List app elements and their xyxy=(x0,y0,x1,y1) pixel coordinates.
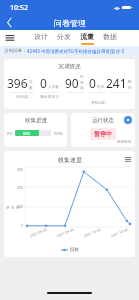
staticText: 暂停中 xyxy=(94,130,112,138)
staticText: 396 xyxy=(7,75,28,91)
button[interactable]: Status info xyxy=(124,116,132,124)
button[interactable]: 流量 xyxy=(79,31,95,46)
staticText: 剩余样本 0 xyxy=(40,94,59,99)
staticText: 0% xyxy=(7,131,13,136)
staticText: 当前问卷： xyxy=(4,48,27,54)
staticText: 收集速度 xyxy=(58,156,82,164)
staticText: 42443 中国消费者对5G手机接待偏好调查(暂停 0 xyxy=(27,48,124,54)
staticText: 已完成 xyxy=(80,75,87,90)
staticText: 收集份数 xyxy=(4,203,20,209)
staticText: 90 xyxy=(65,75,79,91)
staticText: 2021-09-28 xyxy=(29,227,48,238)
staticText: 开始 241 xyxy=(62,100,135,105)
staticText: 0 xyxy=(89,75,96,91)
staticText: 流量 xyxy=(80,32,94,41)
button[interactable]: Back xyxy=(0,15,18,30)
staticText: 100% xyxy=(53,131,64,136)
staticText: 241 xyxy=(106,75,127,91)
staticText: 数据 xyxy=(103,32,117,41)
staticText: 2021-09-30 xyxy=(56,227,75,238)
button[interactable]: 运行状态 xyxy=(71,113,135,147)
staticText: 收集进度 xyxy=(25,117,47,124)
staticText: 0 xyxy=(21,223,24,228)
staticText: 分发 xyxy=(57,32,71,41)
staticText: 10:52 xyxy=(10,3,28,13)
staticText: 200 xyxy=(17,167,24,172)
button[interactable]: 收集速度 xyxy=(4,151,135,257)
staticText: 甄别 xyxy=(128,80,132,90)
button[interactable]: 收集进度 xyxy=(4,113,67,147)
button[interactable]: 设计 xyxy=(33,31,49,46)
staticText: 份数 xyxy=(70,247,79,253)
staticText: 66% xyxy=(23,131,31,136)
staticText: 0 xyxy=(40,75,47,91)
staticText: 已完成 xyxy=(16,94,28,99)
staticText: 拒访 xyxy=(97,85,105,90)
staticText: 运行状态 xyxy=(92,117,114,124)
staticText: 完成情况 xyxy=(4,63,135,70)
staticText: 2021-10-02 xyxy=(83,227,102,238)
button[interactable]: Menu xyxy=(0,30,20,46)
button[interactable]: 数据 xyxy=(102,31,118,46)
staticText: 问卷管理 xyxy=(54,18,86,28)
button[interactable]: 完成情况 xyxy=(4,59,135,109)
button[interactable]: Chart options xyxy=(123,155,132,164)
staticText: 200 xyxy=(17,185,24,190)
staticText: 设计 xyxy=(34,32,48,41)
staticText: 私密取号 xyxy=(117,140,132,143)
staticText: 100 xyxy=(17,204,24,209)
button[interactable]: 分发 xyxy=(56,31,72,46)
staticText: 次数 xyxy=(29,80,36,90)
staticText: 2021-10-04 xyxy=(110,227,129,238)
staticText: 人次数 xyxy=(48,85,59,90)
